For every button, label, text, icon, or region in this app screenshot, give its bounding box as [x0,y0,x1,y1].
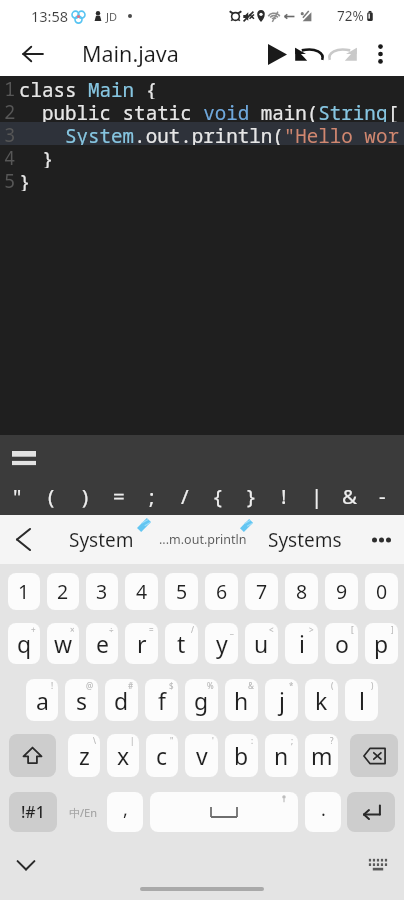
staticText: , [123,797,128,822]
button[interactable]: - [366,476,399,515]
staticText: | [311,482,323,510]
button[interactable]: Hide keyboard [10,849,42,881]
staticText: " [170,735,174,746]
button[interactable]: ...m.out.println [155,515,251,564]
staticText: h [234,685,249,716]
button[interactable]: " [0,476,34,515]
staticText: { [214,482,222,510]
staticText: & [342,482,358,510]
button[interactable]: m [305,734,338,777]
button[interactable]: p [365,623,398,664]
button[interactable]: ; [135,476,168,515]
button[interactable]: 中/En [64,792,102,832]
staticText: Systems [268,527,342,553]
button[interactable]: 9 [325,573,358,610]
button[interactable]: Shift [9,734,56,777]
button[interactable]: !#1 [9,792,57,832]
button[interactable]: l [345,679,378,721]
button[interactable]: a [26,679,58,721]
staticText: | [130,735,135,746]
staticText: 5 [176,578,188,605]
button[interactable]: r [125,623,158,664]
button[interactable]: j [265,679,298,721]
button[interactable]: x [107,734,139,777]
staticText: 7 [256,578,268,605]
staticText: 5 [4,168,16,191]
staticText: 8 [296,578,308,605]
staticText: 1 [18,578,30,605]
button[interactable]: u [245,623,278,664]
staticText: w [54,628,73,659]
staticText: ; [149,482,155,510]
button[interactable]: = [102,476,135,515]
button[interactable]: 5 [165,573,198,610]
staticText: & [248,680,254,691]
button[interactable]: 7 [245,573,278,610]
button[interactable]: ( [34,476,68,515]
button[interactable]: d [105,679,138,721]
button[interactable]: , [107,792,143,832]
button[interactable]: Space [150,792,298,832]
button[interactable]: Previous suggestions [6,515,40,564]
staticText: 0 [376,578,388,605]
button[interactable]: 4 [125,573,158,610]
button[interactable]: n [265,734,298,777]
staticText: Main.java [82,39,179,68]
staticText: + [31,624,36,635]
staticText: q [17,628,32,659]
button[interactable]: z [68,734,100,777]
button[interactable]: g [185,679,218,721]
staticText: n [274,740,289,771]
button[interactable]: c [146,734,178,777]
staticText: 2 [57,578,69,605]
button[interactable]: System [51,515,152,564]
button[interactable]: Backspace [350,734,398,777]
button[interactable]: t [165,623,198,664]
button[interactable]: ) [68,476,102,515]
staticText: _ [230,624,234,635]
button[interactable]: y [205,623,238,664]
button[interactable]: Undo [288,33,330,75]
button[interactable]: o [325,623,358,664]
button[interactable]: k [305,679,338,721]
button[interactable]: 6 [205,573,238,610]
staticText: : [251,735,254,746]
button[interactable]: Switch input method [362,849,394,881]
button[interactable]: i [285,623,318,664]
button[interactable]: s [65,679,98,721]
staticText: ! [281,482,287,510]
button[interactable]: } [234,476,267,515]
button[interactable]: . [305,792,341,832]
button[interactable]: h [225,679,258,721]
button[interactable]: 8 [285,573,318,610]
button[interactable]: 3 [86,573,118,610]
button[interactable]: { [201,476,234,515]
button[interactable]: ! [267,476,300,515]
button[interactable]: Toolbar menu [6,443,42,473]
staticText: 72% [337,7,364,25]
button[interactable]: 1 [8,573,40,610]
staticText: t [177,628,186,659]
button[interactable]: | [300,476,333,515]
staticText: !#1 [21,801,45,823]
button[interactable]: f [145,679,178,721]
button[interactable]: More options [360,34,400,74]
button[interactable]: q [8,623,40,664]
button[interactable]: Systems [259,515,351,564]
button[interactable]: Redo [322,33,364,75]
button[interactable]: More suggestions [364,515,398,564]
button[interactable]: Enter [347,792,395,832]
button[interactable]: Run [256,33,298,75]
button[interactable]: b [225,734,258,777]
button[interactable]: & [333,476,366,515]
button[interactable]: e [86,623,118,664]
button[interactable]: w [47,623,79,664]
staticText: e [96,628,109,659]
staticText: p [374,628,389,659]
button[interactable]: 2 [47,573,79,610]
button[interactable]: Back [12,33,54,75]
button[interactable]: 0 [365,573,398,610]
button[interactable]: / [168,476,201,515]
staticText: a [36,685,49,716]
button[interactable]: v [185,734,218,777]
